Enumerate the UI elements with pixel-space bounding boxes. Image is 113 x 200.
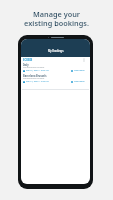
button[interactable]: Barcelona Brussels: [21, 73, 90, 84]
staticText: View detail: [74, 80, 85, 83]
staticText: Italy: [23, 63, 29, 66]
button[interactable]: My Bookings: [21, 39, 90, 57]
staticText: Sep 14, 2023 | 2:30 PM: [26, 80, 49, 83]
button[interactable]: ECOBIS: [21, 57, 90, 62]
staticText: Manage your existing bookings.: [24, 9, 89, 28]
staticText: Confirmation number: [23, 77, 45, 80]
button[interactable]: View detail: [71, 80, 85, 83]
staticText: View detail: [74, 69, 85, 72]
button[interactable]: Italy: [21, 62, 90, 73]
staticText: Confirmation number: [23, 66, 45, 69]
staticText: Sep 12, 2023 | 9:00 AM: [26, 69, 49, 72]
staticText: ECOBIS: [23, 58, 33, 62]
button[interactable]: View detail: [71, 69, 85, 72]
staticText: Barcelona Brussels: [23, 74, 47, 77]
staticText: My Bookings: [48, 49, 64, 52]
